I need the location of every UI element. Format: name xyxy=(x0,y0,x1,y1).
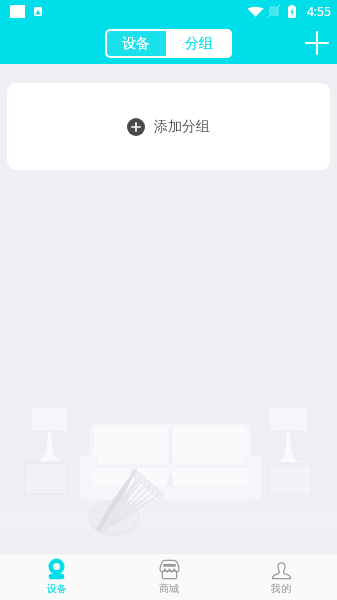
button[interactable]: 设备 xyxy=(105,29,166,58)
button[interactable]: 添加分组 xyxy=(7,83,330,170)
button[interactable]: 商城 xyxy=(113,553,225,600)
button[interactable]: 设备 xyxy=(0,553,113,600)
staticText: 设备 xyxy=(122,35,150,53)
button[interactable]: 我的 xyxy=(225,553,337,600)
staticText: 设备 xyxy=(47,582,67,595)
staticText: 商城 xyxy=(159,582,179,595)
staticText: 4:55 xyxy=(307,3,331,19)
staticText: 分组 xyxy=(185,35,213,53)
staticText: 我的 xyxy=(271,582,291,595)
staticText: 添加分组 xyxy=(154,118,210,136)
button[interactable]: 分组 xyxy=(166,29,232,58)
button[interactable]: Add xyxy=(301,27,333,59)
